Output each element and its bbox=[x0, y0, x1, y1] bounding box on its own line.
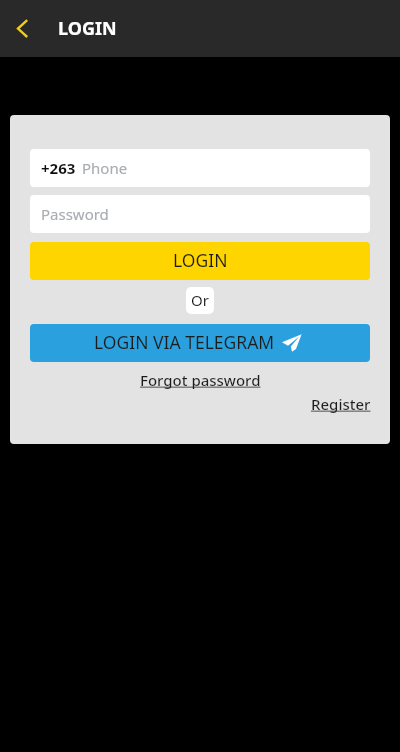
staticText: +263 bbox=[41, 158, 76, 178]
staticText: LOGIN VIA TELEGRAM bbox=[94, 330, 275, 354]
button[interactable]: Forgot password bbox=[130, 366, 271, 394]
staticText: LOGIN bbox=[58, 16, 117, 41]
button[interactable]: Back bbox=[0, 0, 44, 57]
staticText: Forgot password bbox=[140, 370, 261, 390]
staticText: Password bbox=[41, 204, 109, 224]
button[interactable]: Password bbox=[30, 195, 370, 233]
button[interactable]: +263 bbox=[30, 149, 370, 187]
staticText: Register bbox=[311, 394, 371, 414]
button[interactable]: Register bbox=[301, 390, 381, 418]
staticText: Or bbox=[191, 290, 209, 310]
staticText: Phone bbox=[82, 158, 128, 178]
button[interactable]: LOGIN VIA TELEGRAM bbox=[30, 324, 370, 362]
button[interactable]: LOGIN bbox=[30, 242, 370, 280]
staticText: LOGIN bbox=[173, 248, 228, 272]
